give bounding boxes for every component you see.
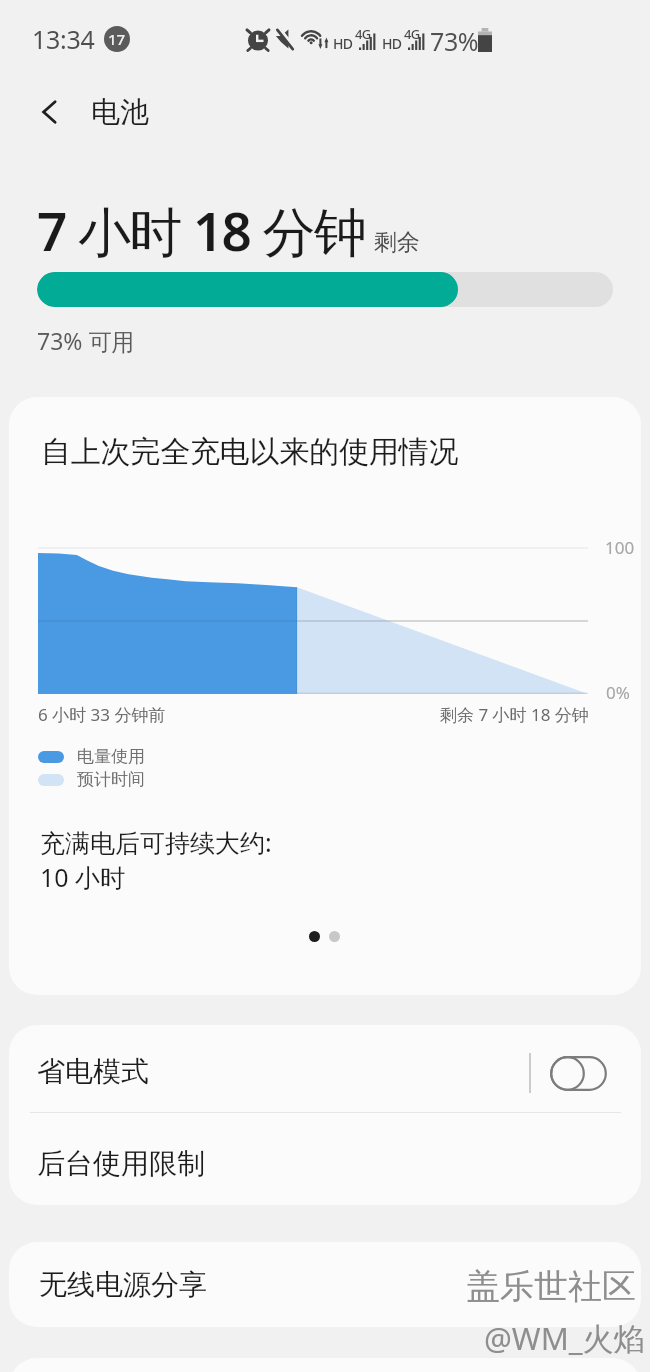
staticText: 100 <box>605 536 635 559</box>
staticText: 自上次完全充电以来的使用情况 <box>41 433 459 471</box>
staticText: HD <box>333 34 353 53</box>
button[interactable]: 省电模式 <box>9 1025 641 1112</box>
staticText: 4G <box>404 25 420 43</box>
staticText: 剩余 7 小时 18 分钟 <box>440 703 589 726</box>
staticText: 10 小时 <box>40 860 126 894</box>
button[interactable]: Page 1 <box>309 931 320 942</box>
staticText: 充满电后可持续大约: <box>40 825 272 859</box>
staticText: HD <box>382 34 402 53</box>
staticText: @WM_火焰 <box>484 1317 645 1359</box>
staticText: 7 小时 18 分钟 <box>37 194 366 266</box>
staticText: 剩余 <box>374 228 420 257</box>
staticText: 13:34 <box>32 22 95 56</box>
staticText: 预计时间 <box>77 769 145 790</box>
staticText: 无线电源分享 <box>39 1267 207 1302</box>
staticText: 后台使用限制 <box>37 1146 205 1181</box>
staticText: 73% 可用 <box>37 325 135 356</box>
staticText: 6 小时 33 分钟前 <box>38 703 166 726</box>
staticText: 省电模式 <box>37 1054 149 1089</box>
staticText: 73% <box>430 24 479 58</box>
staticText: 电量使用 <box>77 746 145 767</box>
button[interactable]: Back <box>14 76 86 148</box>
button[interactable]: 无线电源分享 <box>9 1242 641 1327</box>
button[interactable]: Power saving mode toggle <box>550 1056 607 1091</box>
button[interactable]: 后台使用限制 <box>9 1113 641 1205</box>
staticText: 4G <box>355 25 371 43</box>
button[interactable]: Page 2 <box>329 931 340 942</box>
staticText: 0% <box>606 681 630 704</box>
staticText: 17 <box>108 29 126 49</box>
staticText: 电池 <box>91 94 149 131</box>
staticText: 盖乐世社区 <box>466 1265 636 1308</box>
